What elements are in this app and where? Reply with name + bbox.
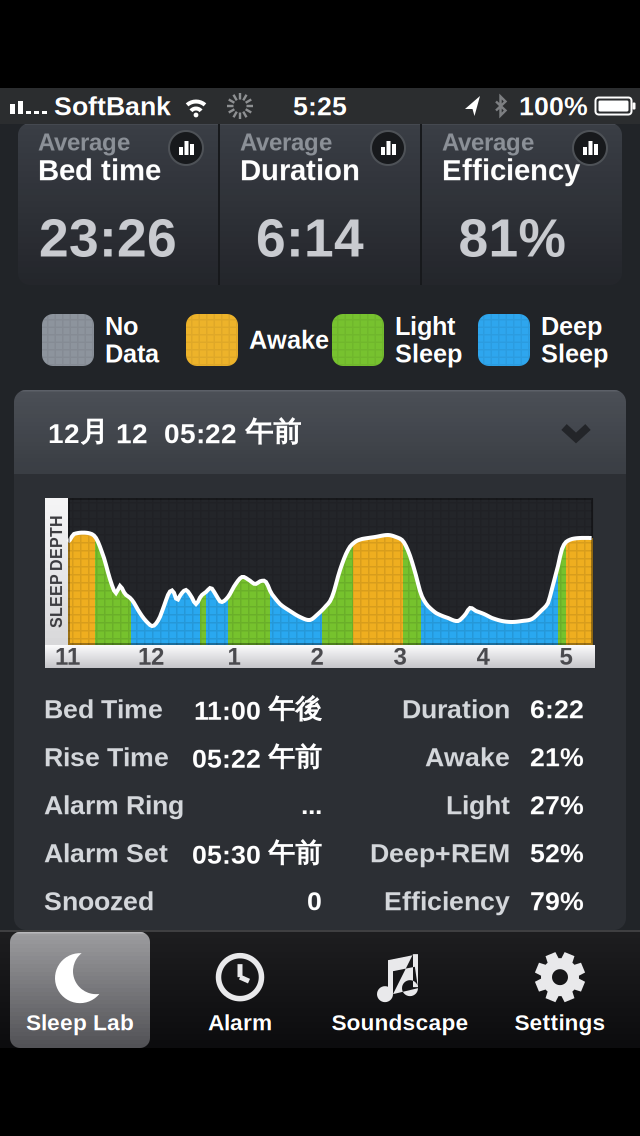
staticText: Duration <box>402 694 510 723</box>
button[interactable]: Settings <box>480 930 640 1048</box>
staticText: Light <box>446 790 510 819</box>
staticText: SLEEP DEPTH <box>0 563 113 580</box>
staticText: Average <box>38 129 130 155</box>
staticText: 05:22 午前 <box>192 741 322 773</box>
staticText: 05:30 午前 <box>192 837 322 869</box>
button[interactable]: Statistics chart <box>169 131 203 165</box>
staticText: 2 <box>310 643 323 669</box>
staticText: Snoozed <box>44 886 154 915</box>
staticText: Alarm Ring <box>44 790 184 819</box>
staticText: Light <box>395 312 455 340</box>
staticText: 12月 12 05:22 午前 <box>48 415 301 449</box>
staticText: Sleep <box>395 340 462 368</box>
staticText: SoftBank <box>54 91 171 120</box>
staticText: 3 <box>393 643 406 669</box>
staticText: Deep <box>541 312 602 340</box>
staticText: 4 <box>476 643 489 669</box>
staticText: 0 <box>307 886 322 915</box>
staticText: Average <box>240 129 332 155</box>
button[interactable]: Statistics chart <box>573 131 607 165</box>
staticText: Sleep <box>541 340 608 368</box>
staticText: 1 <box>227 643 240 669</box>
staticText: 79% <box>530 886 584 915</box>
staticText: 11 <box>55 643 81 669</box>
staticText: ... <box>301 790 322 819</box>
button[interactable]: Sleep Lab <box>0 930 160 1048</box>
staticText: 6:22 <box>530 694 584 723</box>
staticText: 81% <box>458 209 565 267</box>
staticText: Duration <box>240 154 360 186</box>
staticText: Settings <box>514 1010 605 1035</box>
staticText: 21% <box>530 742 584 771</box>
staticText: Bed Time <box>44 694 163 723</box>
staticText: Awake <box>425 742 510 771</box>
staticText: Data <box>105 340 159 368</box>
staticText: 27% <box>530 790 584 819</box>
staticText: Efficiency <box>442 154 580 186</box>
button[interactable]: Soundscape <box>320 930 480 1048</box>
staticText: Bed time <box>38 154 161 186</box>
staticText: Rise Time <box>44 742 169 771</box>
staticText: 6:14 <box>256 209 364 267</box>
staticText: Sleep Lab <box>26 1010 134 1035</box>
button[interactable]: Statistics chart <box>371 131 405 165</box>
staticText: 5:25 <box>293 91 347 120</box>
staticText: 52% <box>530 838 584 867</box>
staticText: Efficiency <box>384 886 510 915</box>
staticText: 23:26 <box>39 209 177 267</box>
staticText: Soundscape <box>331 1010 468 1035</box>
button[interactable]: 12月 12 05:22 午前 <box>14 390 626 474</box>
staticText: Alarm Set <box>44 838 168 867</box>
button[interactable]: Alarm <box>160 930 320 1048</box>
staticText: Awake <box>249 326 329 354</box>
staticText: No <box>105 312 138 340</box>
staticText: 12 <box>138 643 164 669</box>
staticText: 5 <box>559 643 572 669</box>
staticText: Alarm <box>208 1010 272 1035</box>
staticText: Deep+REM <box>370 838 510 867</box>
staticText: 100% <box>519 91 588 120</box>
staticText: 11:00 午後 <box>194 693 322 725</box>
staticText: Average <box>442 129 534 155</box>
